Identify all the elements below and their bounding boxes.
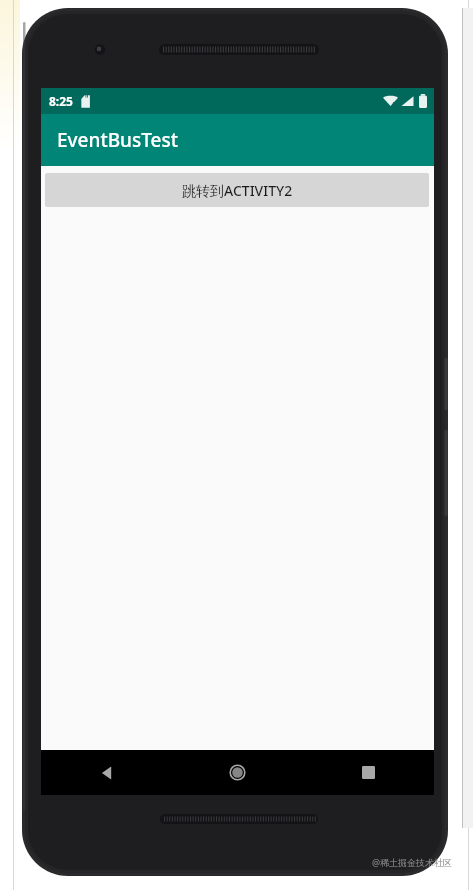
staticText: @稀土掘金技术社区 [372,856,453,868]
button[interactable]: Recent apps [303,750,434,795]
button[interactable]: Back [41,750,172,795]
button[interactable]: 跳转到ACTIVITY2 [45,173,429,207]
staticText: EventBusTest [57,127,179,153]
button[interactable]: Home [172,750,303,795]
staticText: 跳转到ACTIVITY2 [182,181,293,200]
staticText: 8:25 [49,93,73,109]
